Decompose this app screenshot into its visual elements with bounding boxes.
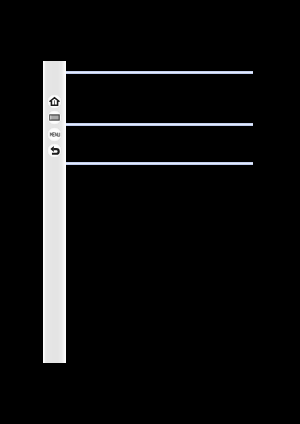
button[interactable]: Back bbox=[47, 143, 62, 158]
button[interactable]: Menu bbox=[47, 127, 62, 142]
button[interactable]: Home bbox=[47, 94, 62, 109]
button[interactable]: Recent apps bbox=[47, 110, 62, 125]
